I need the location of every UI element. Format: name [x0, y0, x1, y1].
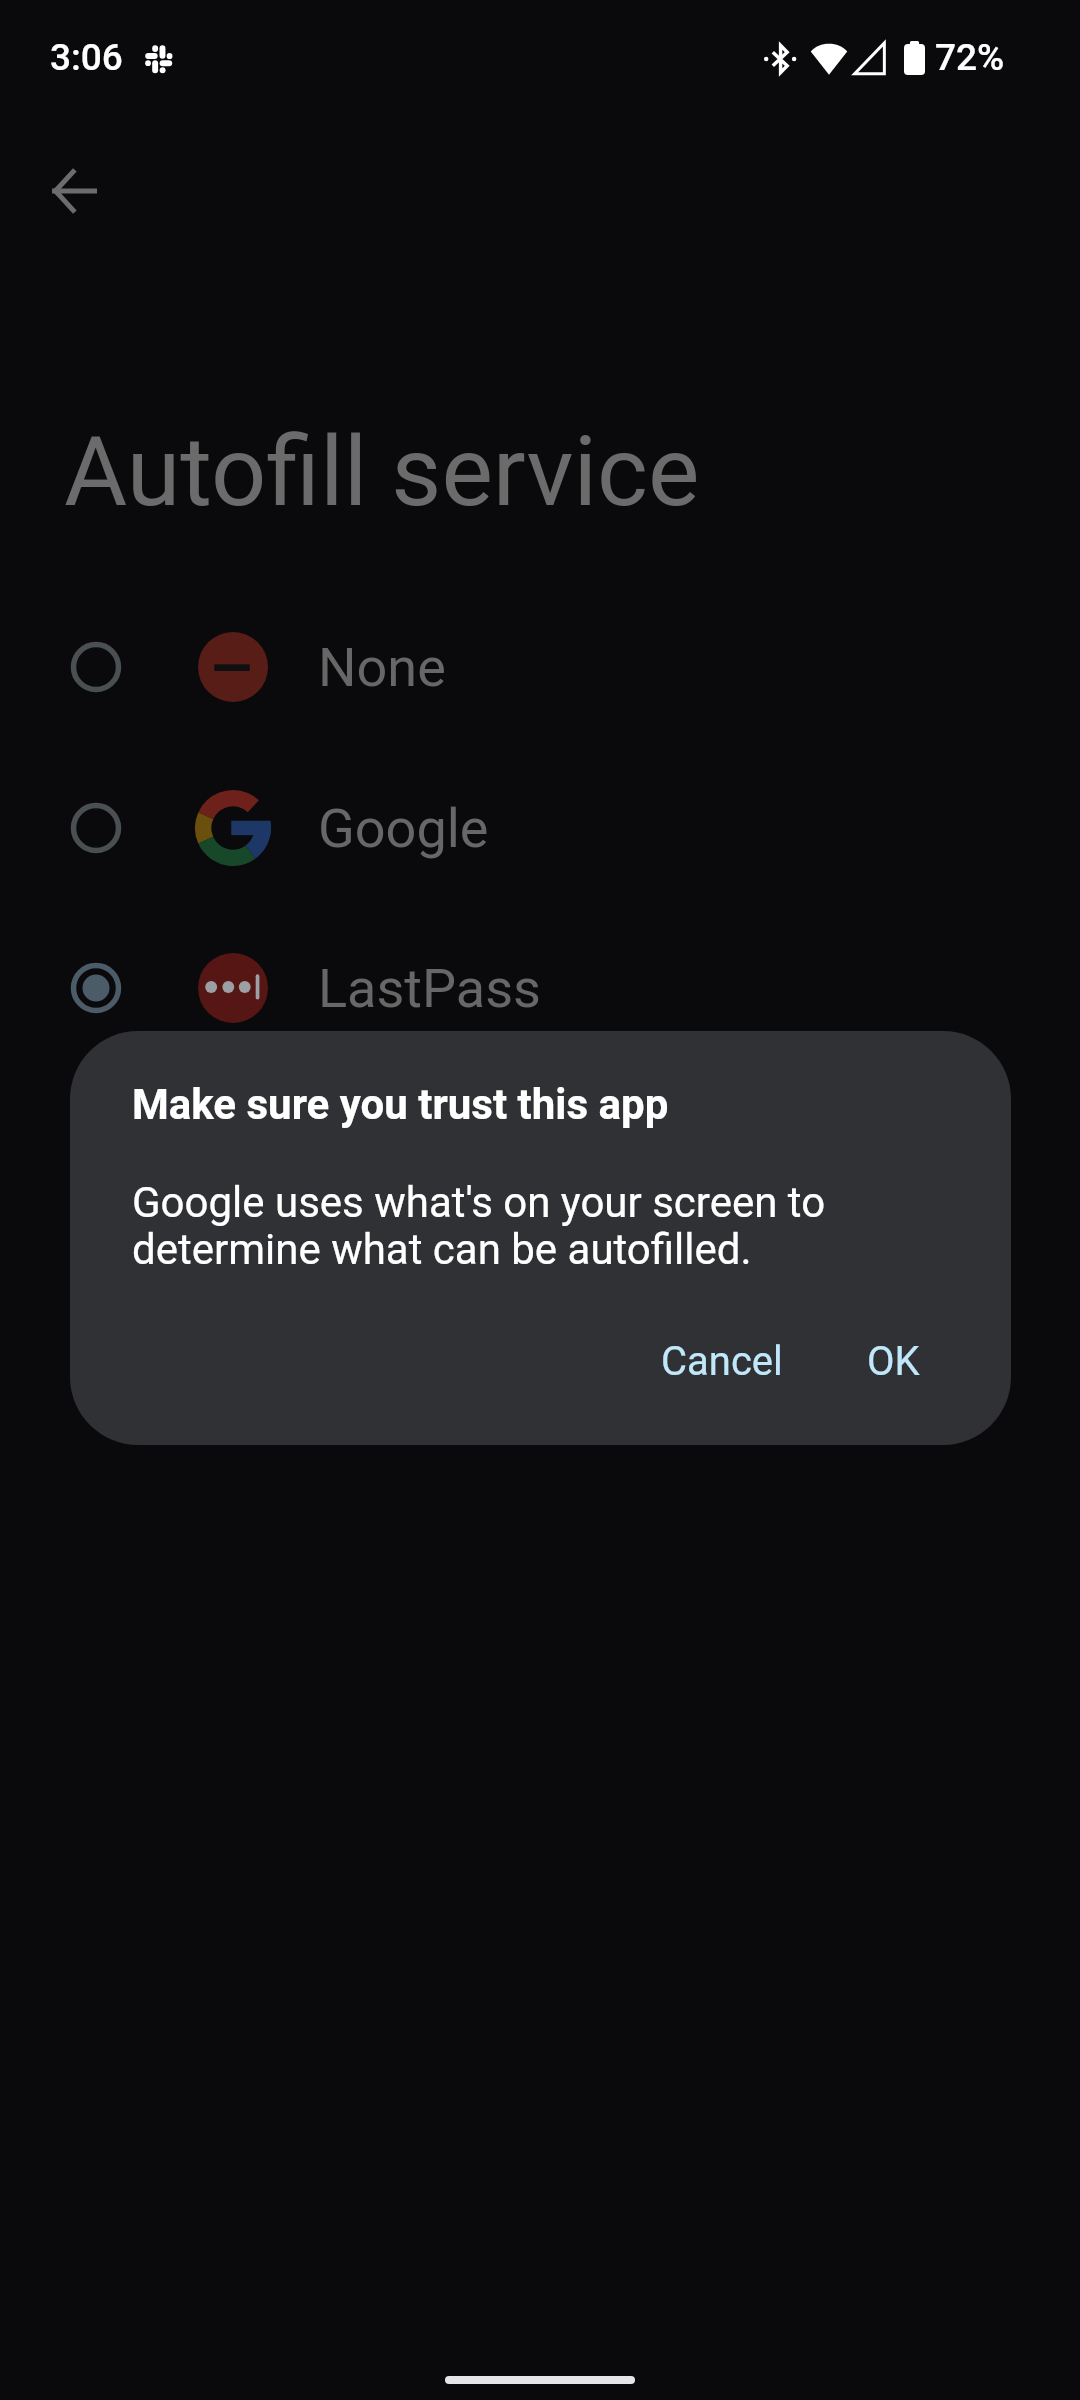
button[interactable]: Back [26, 143, 122, 239]
button[interactable]: Cancel [639, 1311, 805, 1411]
staticText: Make sure you trust this app [132, 1080, 669, 1129]
button[interactable]: LastPass [0, 913, 1080, 1063]
staticText: 72% [935, 36, 1005, 79]
button[interactable]: Google [0, 753, 1080, 903]
staticText: 3:06 [50, 36, 123, 79]
staticText: Cancel [661, 1338, 783, 1385]
staticText: None [318, 636, 446, 699]
staticText: Autofill service [64, 415, 700, 529]
button[interactable]: None [0, 592, 1080, 742]
button[interactable]: OK [845, 1311, 942, 1411]
staticText: OK [867, 1338, 920, 1385]
staticText: Google [318, 797, 489, 860]
staticText: Google uses what's on your screen to det… [132, 1178, 826, 1274]
staticText: LastPass [318, 957, 541, 1020]
